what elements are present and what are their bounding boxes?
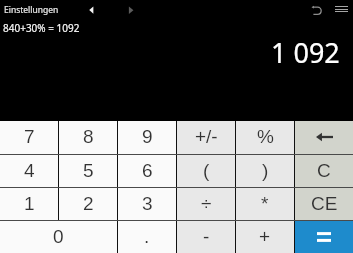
staticText: 840+30% = 1092 (3, 21, 80, 35)
staticText: + (259, 226, 271, 247)
button[interactable]: + (236, 221, 294, 253)
staticText: ) (262, 160, 269, 181)
button[interactable]: ÷ (177, 188, 235, 220)
button[interactable]: +/- (177, 121, 235, 154)
staticText: 2 (83, 193, 94, 214)
button[interactable]: 3 (118, 188, 176, 220)
staticText: 4 (24, 160, 35, 181)
button[interactable]: 7 (0, 121, 58, 154)
staticText: CE (311, 193, 338, 214)
staticText: * (261, 193, 269, 214)
button[interactable]: - (177, 221, 235, 253)
staticText: C (317, 160, 331, 181)
button[interactable]: 4 (0, 155, 58, 187)
button[interactable]: Next expression (122, 2, 138, 18)
button[interactable]: % (236, 121, 294, 154)
staticText: ÷ (201, 193, 212, 214)
button[interactable]: Undo (308, 1, 326, 19)
staticText: 5 (83, 160, 94, 181)
button[interactable]: ) (236, 155, 294, 187)
button[interactable]: 6 (118, 155, 176, 187)
staticText: - (203, 226, 210, 247)
staticText: ( (203, 160, 210, 181)
button[interactable]: Previous expression (86, 2, 102, 18)
staticText: +/- (195, 126, 218, 147)
staticText: 1 (24, 193, 35, 214)
button[interactable]: * (236, 188, 294, 220)
button[interactable]: 1 (0, 188, 58, 220)
button[interactable]: 9 (118, 121, 176, 154)
button[interactable]: C (295, 155, 353, 187)
button[interactable]: Backspace (295, 121, 353, 154)
staticText: 9 (142, 126, 153, 147)
button[interactable]: Menu (334, 0, 350, 18)
button[interactable]: Einstellungen (4, 4, 59, 16)
staticText: 8 (83, 126, 94, 147)
button[interactable]: 0 (0, 221, 117, 253)
staticText: 0 (53, 226, 64, 247)
staticText: 1 092 (271, 34, 340, 71)
staticText: 3 (142, 193, 153, 214)
staticText: . (144, 226, 150, 247)
staticText: 7 (24, 126, 35, 147)
button[interactable]: 2 (59, 188, 117, 220)
button[interactable]: 5 (59, 155, 117, 187)
button[interactable]: Equals (295, 221, 353, 253)
button[interactable]: ( (177, 155, 235, 187)
staticText: 6 (142, 160, 153, 181)
button[interactable]: . (118, 221, 176, 253)
button[interactable]: CE (295, 188, 353, 220)
button[interactable]: 8 (59, 121, 117, 154)
staticText: % (257, 126, 274, 147)
